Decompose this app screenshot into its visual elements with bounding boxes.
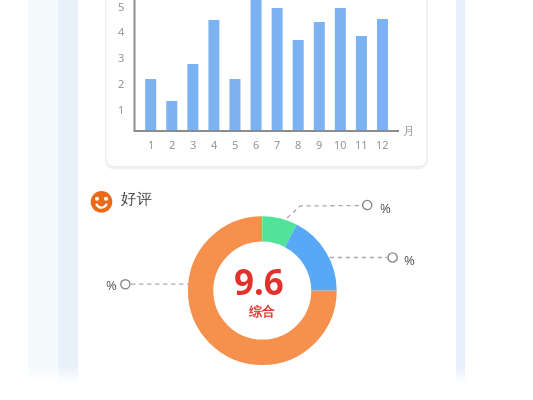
staticText: % bbox=[106, 276, 117, 292]
staticText: 1 bbox=[118, 102, 125, 116]
staticText: 2 bbox=[118, 76, 125, 90]
staticText: 5 bbox=[118, 0, 125, 13]
staticText: 4 bbox=[211, 137, 218, 151]
staticText: 10 bbox=[334, 137, 347, 151]
staticText: 3 bbox=[190, 137, 197, 151]
staticText: 9.6 bbox=[234, 258, 284, 300]
staticText: 4 bbox=[118, 24, 125, 38]
staticText: 6 bbox=[253, 137, 260, 151]
staticText: 综合 bbox=[249, 303, 275, 319]
staticText: 3 bbox=[118, 50, 125, 64]
staticText: % bbox=[404, 251, 415, 267]
staticText: 11 bbox=[355, 137, 368, 151]
staticText: 9 bbox=[316, 137, 323, 151]
staticText: 12 bbox=[376, 137, 389, 151]
staticText: 1 bbox=[148, 137, 155, 151]
staticText: % bbox=[380, 199, 391, 215]
button[interactable]: 好评 bbox=[84, 186, 152, 212]
staticText: 5 bbox=[232, 137, 239, 151]
staticText: 7 bbox=[274, 137, 281, 151]
staticText: 月 bbox=[403, 124, 414, 138]
staticText: 8 bbox=[295, 137, 302, 151]
staticText: 好评 bbox=[121, 189, 152, 209]
staticText: 2 bbox=[169, 137, 176, 151]
